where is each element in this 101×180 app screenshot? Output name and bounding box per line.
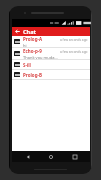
button[interactable]: S-ill [12,60,90,70]
staticText: hi [23,43,27,47]
staticText: a few seconds ago [60,38,88,42]
button[interactable]: Home [43,151,59,162]
staticText: Chat [23,28,37,36]
button[interactable]: Echo-p-9 [12,48,90,60]
staticText: Prolog-A [23,36,43,42]
staticText: Prolog-B [23,72,42,78]
staticText: Echo-p-9 [23,48,42,54]
button[interactable]: Prolog-B [12,70,90,80]
button[interactable]: Prolog-A [12,36,90,48]
button[interactable]: Recent apps [67,151,83,162]
button[interactable]: Back [20,151,36,162]
staticText: Thank you mudasir [23,55,59,59]
staticText: S-ill [23,62,31,68]
staticText: a few seconds ago [60,50,88,54]
button[interactable]: Navigate back [12,27,23,36]
